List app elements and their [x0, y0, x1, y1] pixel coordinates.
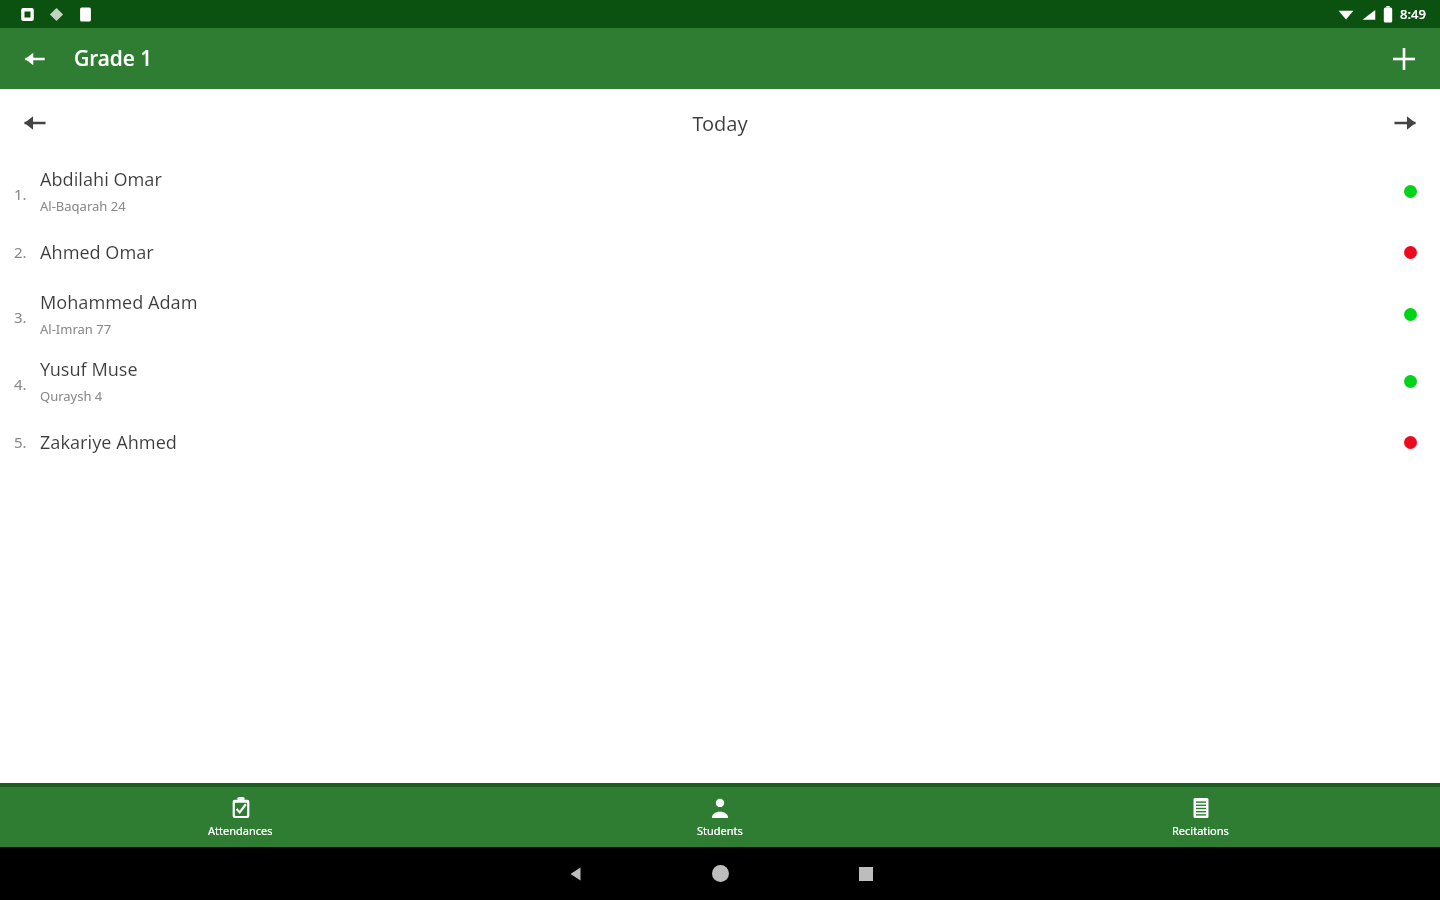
button[interactable]: Back: [14, 38, 56, 80]
staticText: 8:49: [1400, 5, 1426, 23]
staticText: Quraysh 4: [40, 387, 103, 405]
staticText: Ahmed Omar: [40, 240, 154, 265]
staticText: Students: [697, 823, 743, 838]
button[interactable]: 3.: [0, 280, 1440, 347]
button[interactable]: 4.: [0, 347, 1440, 414]
staticText: 5.: [14, 432, 27, 452]
button[interactable]: Next day: [1382, 100, 1428, 146]
staticText: Mohammed Adam: [40, 290, 198, 315]
button[interactable]: Home: [648, 847, 793, 900]
staticText: Al-Baqarah 24: [40, 197, 126, 215]
button[interactable]: 2.: [0, 224, 1440, 280]
button[interactable]: Attendances: [0, 787, 480, 847]
button[interactable]: 1.: [0, 157, 1440, 224]
button[interactable]: 5.: [0, 414, 1440, 470]
button[interactable]: Add: [1382, 37, 1426, 81]
staticText: Grade 1: [74, 44, 153, 73]
staticText: Yusuf Muse: [40, 357, 138, 382]
staticText: Zakariye Ahmed: [40, 430, 177, 455]
staticText: Al-Imran 77: [40, 320, 112, 338]
button[interactable]: Previous day: [12, 100, 58, 146]
staticText: 3.: [14, 307, 27, 327]
staticText: 4.: [14, 374, 27, 394]
staticText: 2.: [14, 242, 27, 262]
staticText: 1.: [14, 184, 27, 204]
button[interactable]: Recents: [793, 847, 938, 900]
button[interactable]: Back: [503, 847, 648, 900]
staticText: Today: [692, 110, 748, 137]
staticText: Recitations: [1172, 823, 1229, 838]
button[interactable]: Students: [480, 787, 960, 847]
staticText: Abdilahi Omar: [40, 167, 162, 192]
button[interactable]: Recitations: [960, 787, 1440, 847]
staticText: Attendances: [208, 823, 273, 838]
